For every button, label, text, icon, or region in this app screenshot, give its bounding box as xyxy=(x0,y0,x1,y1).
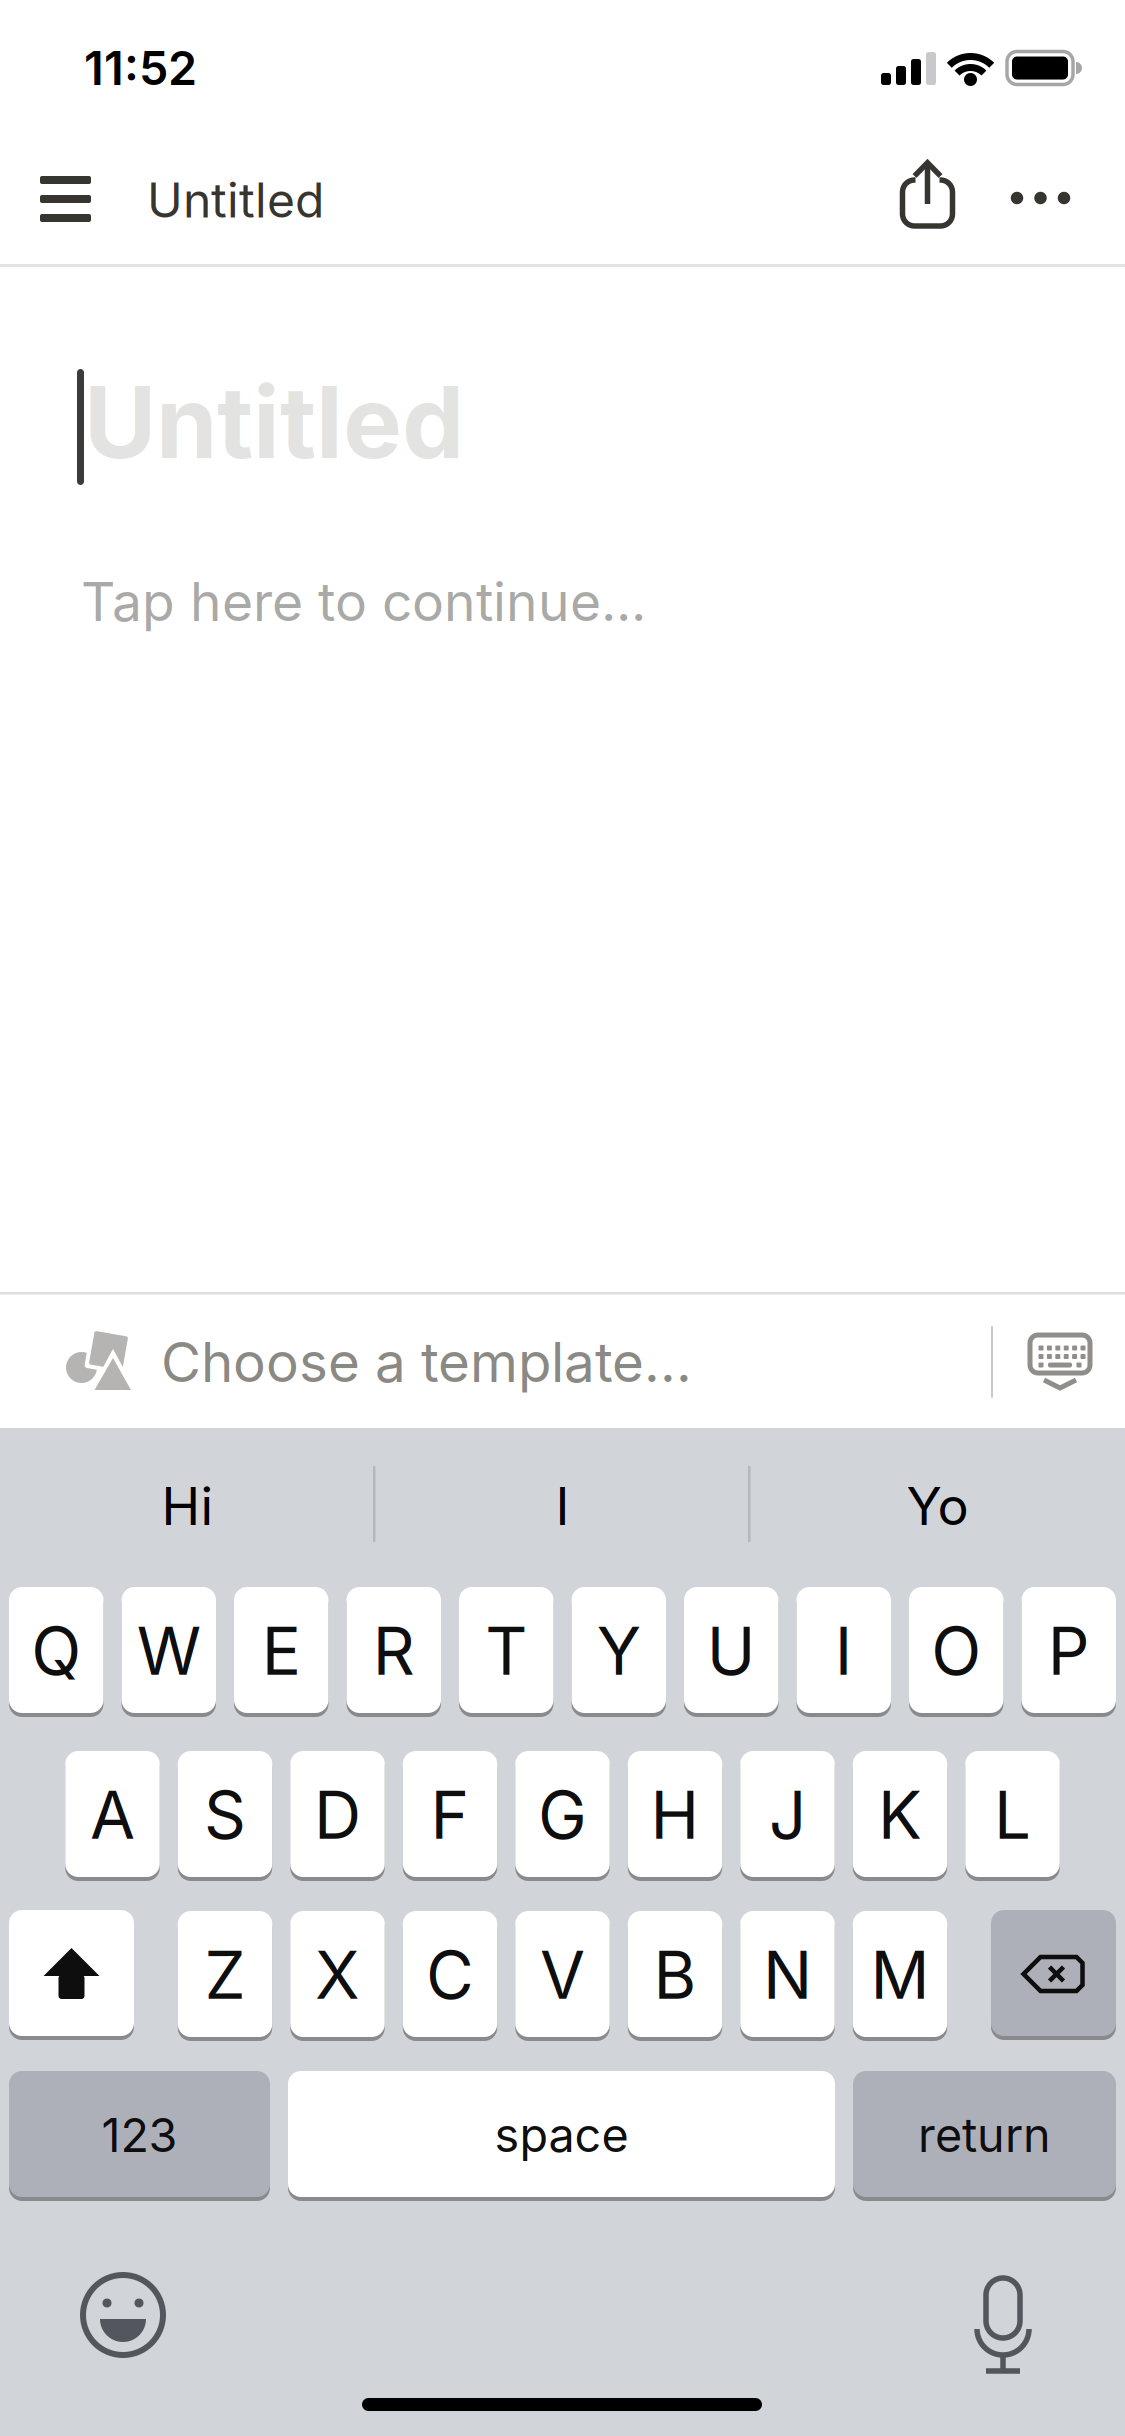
button[interactable]: E xyxy=(234,1586,328,1716)
staticText: Choose a template... xyxy=(161,1330,692,1394)
button[interactable]: Z xyxy=(178,1910,272,2040)
staticText: D xyxy=(314,1776,361,1854)
staticText: V xyxy=(540,1936,585,2014)
staticText: O xyxy=(931,1612,981,1690)
button[interactable]: L xyxy=(965,1750,1060,1880)
button[interactable]: I xyxy=(387,1446,737,1566)
staticText: F xyxy=(430,1776,469,1854)
staticText: Tap here to continue... xyxy=(81,570,646,633)
button[interactable]: Q xyxy=(9,1586,103,1716)
button[interactable]: V xyxy=(515,1910,610,2040)
staticText: X xyxy=(315,1936,360,2014)
staticText: Z xyxy=(204,1936,245,2014)
staticText: N xyxy=(763,1936,812,2014)
button[interactable]: C xyxy=(403,1910,497,2040)
staticText: Y xyxy=(597,1612,641,1690)
button[interactable]: Emoji xyxy=(80,2272,166,2358)
staticText: E xyxy=(262,1612,301,1690)
button[interactable]: Sidebar xyxy=(40,176,91,222)
button[interactable]: H xyxy=(628,1750,722,1880)
staticText: U xyxy=(707,1612,756,1690)
button[interactable]: 123 xyxy=(9,2070,270,2200)
button[interactable]: S xyxy=(178,1750,272,1880)
button[interactable]: Hi xyxy=(12,1446,362,1566)
button[interactable]: P xyxy=(1021,1586,1116,1716)
staticText: G xyxy=(538,1776,587,1854)
staticText: R xyxy=(373,1612,415,1690)
button[interactable]: X xyxy=(290,1910,385,2040)
staticText: I xyxy=(555,1475,569,1537)
staticText: Untitled xyxy=(147,172,324,228)
staticText: K xyxy=(878,1776,922,1854)
button[interactable]: O xyxy=(909,1586,1003,1716)
button[interactable]: space xyxy=(288,2070,835,2200)
staticText: T xyxy=(485,1612,527,1690)
button[interactable]: Shift xyxy=(9,1909,134,2039)
staticText: C xyxy=(426,1936,474,2014)
staticText: S xyxy=(204,1776,246,1854)
button[interactable]: N xyxy=(740,1910,835,2040)
staticText: P xyxy=(1048,1612,1090,1690)
button[interactable]: return xyxy=(853,2070,1116,2200)
button[interactable]: Dictate xyxy=(975,2277,1031,2375)
staticText: W xyxy=(137,1612,201,1690)
button[interactable]: Share xyxy=(900,160,954,228)
staticText: J xyxy=(769,1776,806,1854)
staticText: Yo xyxy=(906,1475,968,1537)
button[interactable]: M xyxy=(853,1910,947,2040)
button[interactable]: A xyxy=(65,1750,160,1880)
staticText: B xyxy=(653,1936,696,2014)
staticText: 123 xyxy=(101,2107,177,2163)
button[interactable]: Y xyxy=(571,1586,666,1716)
button[interactable]: More xyxy=(1010,191,1070,205)
staticText: L xyxy=(994,1776,1031,1854)
button[interactable]: Delete xyxy=(991,1909,1116,2039)
staticText: A xyxy=(90,1776,135,1854)
button[interactable]: Choose a template... xyxy=(65,1296,985,1428)
staticText: I xyxy=(835,1612,853,1690)
button[interactable]: B xyxy=(628,1910,722,2040)
button[interactable]: Dismiss keyboard xyxy=(1028,1334,1092,1392)
button[interactable]: T xyxy=(459,1586,553,1716)
button[interactable]: I xyxy=(796,1586,891,1716)
staticText: Untitled xyxy=(84,364,464,480)
staticText: 11:52 xyxy=(84,40,197,96)
button[interactable]: G xyxy=(515,1750,610,1880)
button[interactable]: K xyxy=(853,1750,947,1880)
button[interactable]: W xyxy=(121,1586,216,1716)
staticText: Hi xyxy=(161,1475,213,1537)
staticText: M xyxy=(870,1936,929,2014)
staticText: space xyxy=(494,2107,628,2163)
button[interactable]: U xyxy=(684,1586,778,1716)
button[interactable]: J xyxy=(740,1750,835,1880)
staticText: Q xyxy=(31,1612,81,1690)
button[interactable]: D xyxy=(290,1750,385,1880)
button[interactable]: Yo xyxy=(762,1446,1112,1566)
button[interactable]: R xyxy=(346,1586,441,1716)
staticText: return xyxy=(918,2107,1051,2163)
button[interactable]: F xyxy=(403,1750,497,1880)
staticText: H xyxy=(650,1776,699,1854)
